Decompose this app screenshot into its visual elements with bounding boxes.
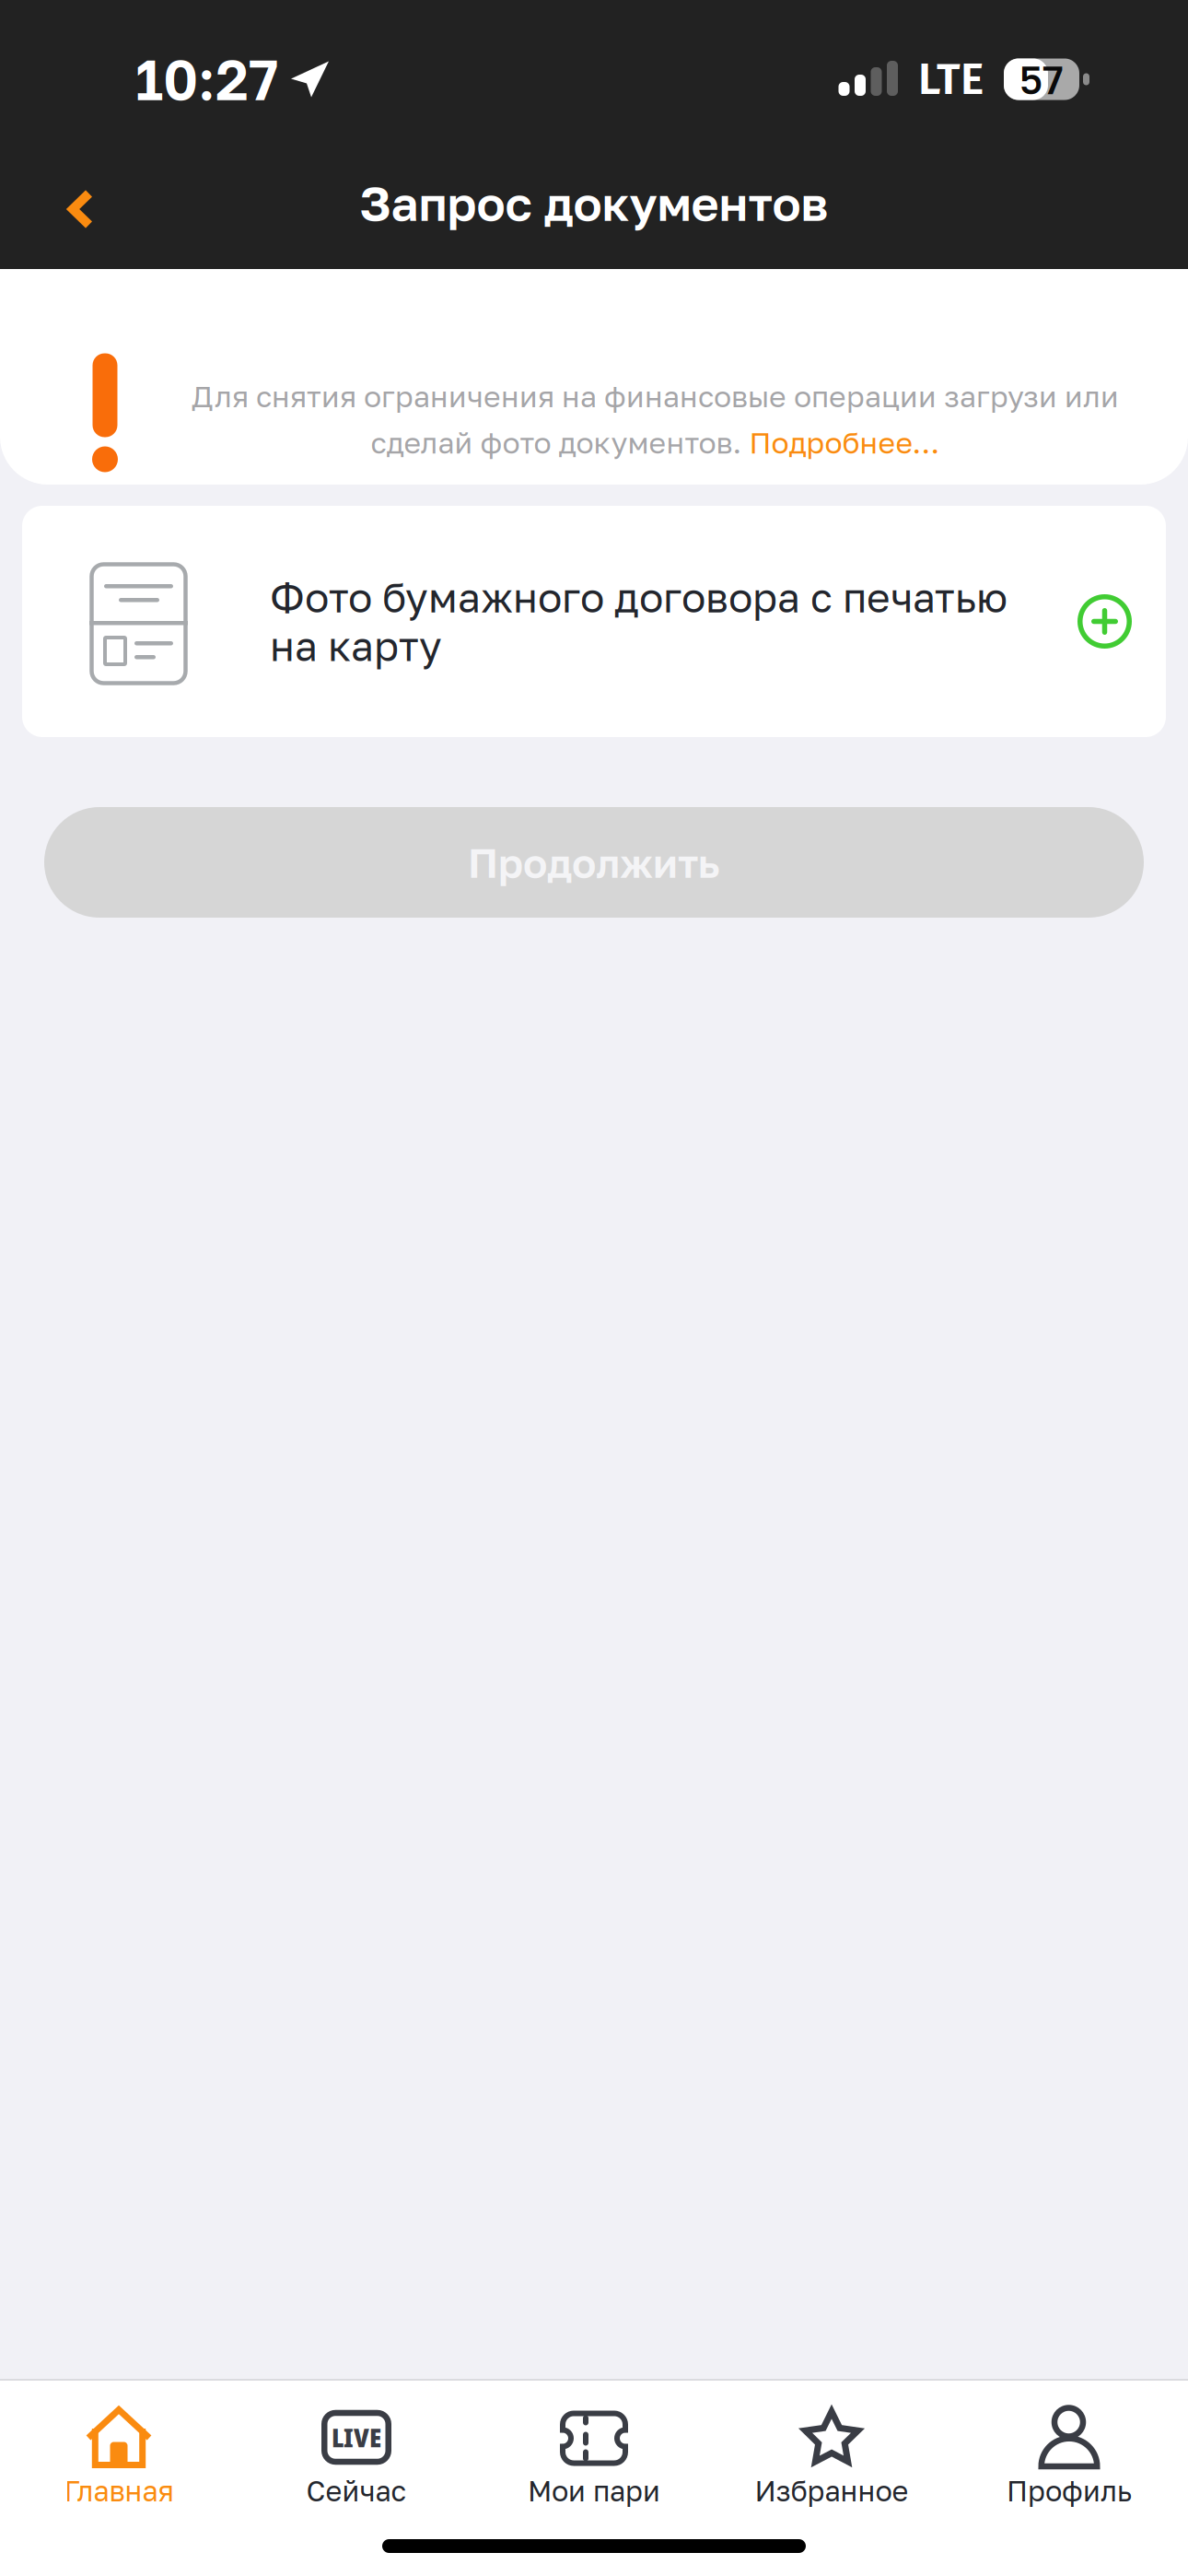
button[interactable]: Back bbox=[0, 151, 140, 254]
staticText: Для снятия ограничения на финансовые опе… bbox=[192, 378, 1119, 414]
staticText: сделай фото документов. bbox=[371, 425, 749, 460]
staticText: 10:27 bbox=[135, 46, 278, 112]
staticText: 57 bbox=[1019, 56, 1064, 103]
staticText: Сейчас bbox=[306, 2474, 407, 2508]
button[interactable]: Фото бумажного договора с печатью на кар… bbox=[22, 506, 1166, 737]
staticText: Запрос документов bbox=[360, 174, 828, 231]
staticText: Профиль bbox=[1007, 2474, 1132, 2508]
button[interactable]: Подробнее... bbox=[749, 425, 940, 460]
button[interactable]: Главная bbox=[0, 2381, 238, 2528]
staticText: Продолжить bbox=[468, 838, 720, 887]
staticText: Подробнее... bbox=[749, 425, 940, 460]
button[interactable]: Профиль bbox=[950, 2381, 1188, 2528]
staticText: LIVE bbox=[332, 2420, 381, 2455]
button[interactable]: Мои пари bbox=[475, 2381, 713, 2528]
staticText: LTE bbox=[918, 53, 984, 106]
staticText: Мои пари bbox=[528, 2474, 660, 2508]
button[interactable]: LIVE bbox=[238, 2381, 475, 2528]
button[interactable]: Избранное bbox=[713, 2381, 950, 2528]
button[interactable]: Продолжить bbox=[44, 807, 1144, 918]
staticText: Фото бумажного договора с печатью на кар… bbox=[270, 573, 1007, 670]
staticText: Главная bbox=[64, 2474, 174, 2508]
staticText: Избранное bbox=[755, 2474, 908, 2508]
